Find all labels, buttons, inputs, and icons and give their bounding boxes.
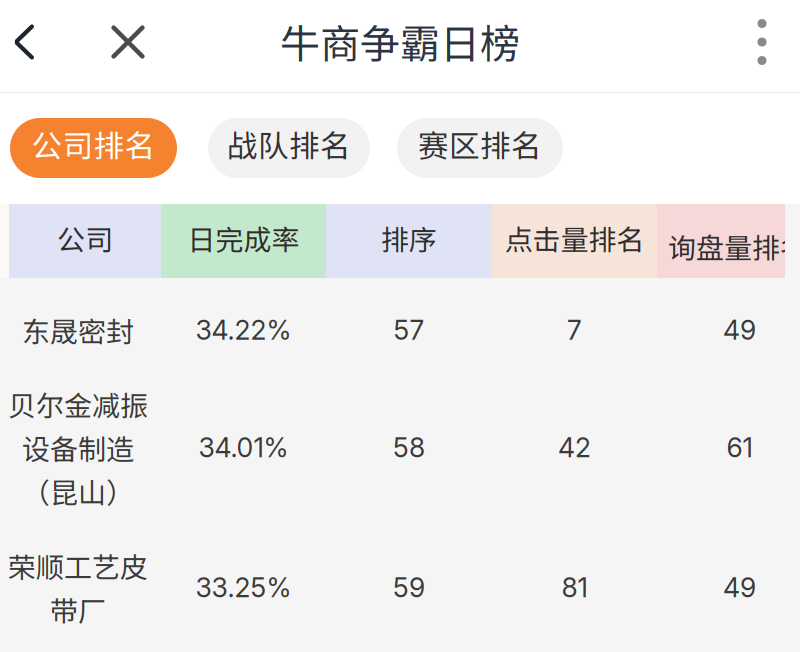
staticText: 59 bbox=[393, 571, 425, 604]
staticText: 公司排名 bbox=[31, 122, 155, 166]
staticText: 东晟密封 bbox=[22, 310, 134, 350]
staticText: 排序 bbox=[381, 218, 437, 258]
staticText: 61 bbox=[726, 431, 752, 464]
staticText: 81 bbox=[561, 571, 587, 604]
staticText: 贝尔金减振 bbox=[8, 384, 148, 424]
staticText: 42 bbox=[558, 431, 591, 464]
staticText: 34.22% bbox=[195, 314, 291, 346]
staticText: 49 bbox=[723, 314, 756, 346]
button[interactable]: 赛区排名 bbox=[397, 118, 563, 178]
staticText: 公司 bbox=[57, 218, 113, 258]
staticText: 58 bbox=[393, 431, 425, 464]
button[interactable]: Close bbox=[96, 6, 160, 78]
staticText: 带厂 bbox=[50, 589, 106, 629]
staticText: 7 bbox=[567, 314, 582, 346]
staticText: 询盘量排名 bbox=[668, 226, 800, 266]
staticText: 设备制造 bbox=[22, 427, 134, 468]
staticText: 34.01% bbox=[198, 431, 288, 464]
staticText: 赛区排名 bbox=[418, 122, 542, 166]
button[interactable]: 荣顺工艺皮 bbox=[9, 513, 800, 652]
button[interactable]: 公司排名 bbox=[10, 118, 177, 178]
button[interactable]: 东晟密封 bbox=[9, 278, 800, 382]
button[interactable]: 战队排名 bbox=[208, 118, 370, 178]
staticText: 战队排名 bbox=[227, 122, 351, 166]
staticText: 49 bbox=[723, 571, 756, 604]
staticText: 荣顺工艺皮 bbox=[8, 545, 148, 586]
button[interactable]: Back bbox=[0, 6, 56, 78]
button[interactable]: More options bbox=[730, 6, 794, 78]
staticText: 点击量排名 bbox=[504, 218, 644, 258]
staticText: 33.25% bbox=[195, 571, 291, 604]
staticText: （昆山） bbox=[22, 471, 134, 511]
button[interactable]: 贝尔金减振 bbox=[9, 382, 800, 513]
staticText: 日完成率 bbox=[187, 218, 299, 258]
staticText: 牛商争霸日榜 bbox=[280, 12, 520, 70]
staticText: 57 bbox=[393, 314, 424, 346]
